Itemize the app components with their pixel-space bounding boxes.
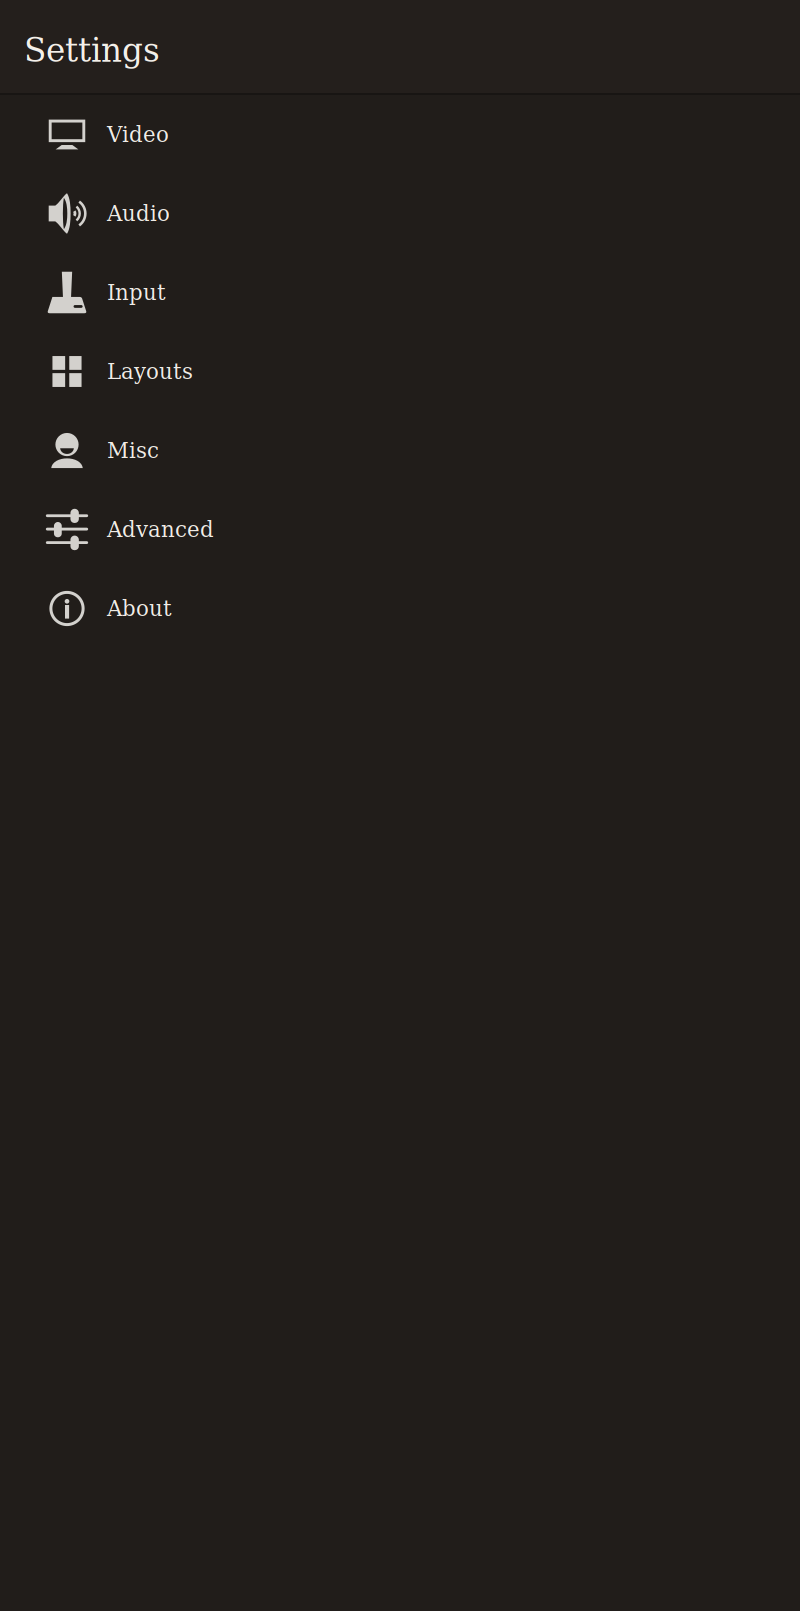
button[interactable]: Layouts — [0, 332, 800, 411]
staticText: Advanced — [107, 517, 214, 542]
staticText: Settings — [24, 31, 160, 69]
button[interactable]: Video — [0, 95, 800, 174]
button[interactable]: Advanced — [0, 490, 800, 569]
button[interactable]: About — [0, 569, 800, 648]
button[interactable]: Audio — [0, 174, 800, 253]
staticText: Layouts — [107, 359, 193, 384]
staticText: Misc — [107, 438, 159, 463]
button[interactable]: Input — [0, 253, 800, 332]
button[interactable]: Misc — [0, 411, 800, 490]
staticText: Audio — [107, 201, 170, 226]
staticText: Input — [107, 280, 166, 305]
staticText: Video — [107, 122, 169, 147]
staticText: About — [107, 596, 172, 621]
